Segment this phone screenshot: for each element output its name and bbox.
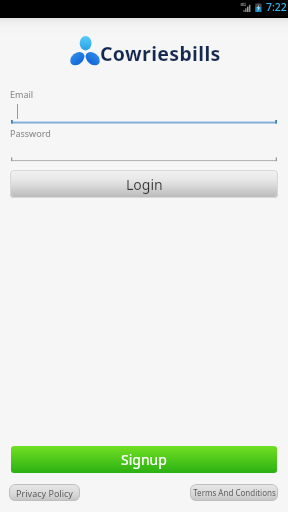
button[interactable]: Login [10,170,278,198]
button[interactable]: Password input [0,140,288,164]
staticText: Password [10,127,51,139]
staticText: Login [126,175,163,194]
staticText: Privacy Policy [16,487,73,499]
button[interactable]: Signup [11,446,277,473]
staticText: Signup [121,450,167,469]
staticText: Cowriesbills [100,40,221,67]
staticText: Email [10,88,34,100]
button[interactable]: Email input [0,100,288,124]
staticText: Terms And Conditions [193,487,276,498]
button[interactable]: Privacy Policy [9,484,80,501]
button[interactable]: Terms And Conditions [190,484,278,501]
staticText: 7:22 [266,0,287,14]
